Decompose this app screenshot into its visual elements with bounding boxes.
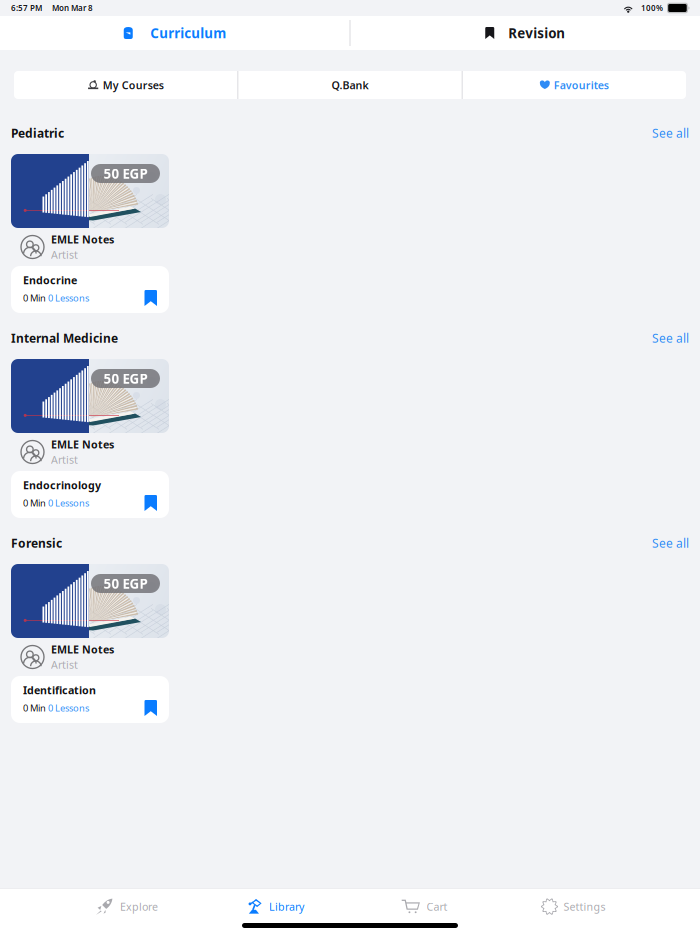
staticText: Mon Mar 8	[52, 3, 93, 13]
button[interactable]: Q.Bank	[238, 71, 462, 99]
staticText: Artist	[51, 452, 78, 467]
staticText: 50 EGP	[103, 165, 147, 182]
staticText: Explore	[120, 899, 158, 914]
button[interactable]: Settings	[499, 894, 648, 920]
button[interactable]: Curriculum	[0, 16, 349, 50]
staticText: 0 Min	[23, 497, 48, 509]
button[interactable]: Favourites	[463, 71, 686, 99]
staticText: My Courses	[103, 78, 164, 92]
staticText: 50 EGP	[103, 370, 147, 387]
staticText: 0 Lessons	[48, 292, 89, 304]
staticText: Q.Bank	[331, 78, 368, 92]
staticText: Artist	[51, 247, 78, 262]
staticText: EMLE Notes	[51, 232, 114, 246]
staticText: 6:57 PM	[11, 3, 42, 13]
staticText: Internal Medicine	[11, 330, 118, 346]
button[interactable]: Cart	[350, 894, 499, 920]
staticText: EMLE Notes	[51, 437, 114, 451]
button[interactable]: Library	[201, 894, 350, 920]
staticText: 0 Lessons	[48, 702, 89, 714]
button[interactable]: Explore	[52, 894, 201, 920]
button[interactable]: Revision	[350, 16, 700, 50]
button[interactable]: See all	[652, 125, 689, 141]
staticText: See all	[652, 125, 689, 141]
staticText: 50 EGP	[103, 575, 147, 592]
staticText: Pediatric	[11, 125, 64, 141]
staticText: Endocrine	[23, 273, 77, 287]
staticText: Endocrinology	[23, 478, 101, 492]
staticText: Favourites	[554, 78, 609, 92]
button[interactable]: 50 EGP	[11, 359, 169, 518]
staticText: Identification	[23, 683, 96, 697]
button[interactable]: My Courses	[14, 71, 237, 99]
staticText: 100%	[641, 3, 663, 13]
staticText: Library	[269, 899, 304, 914]
button[interactable]: 50 EGP	[11, 154, 169, 313]
button[interactable]: See all	[652, 330, 689, 346]
staticText: See all	[652, 330, 689, 346]
staticText: Artist	[51, 657, 78, 672]
button[interactable]: 50 EGP	[11, 564, 169, 723]
staticText: 0 Min	[23, 292, 48, 304]
staticText: Revision	[508, 24, 565, 42]
staticText: Settings	[563, 899, 605, 914]
staticText: 0 Lessons	[48, 497, 89, 509]
staticText: Curriculum	[150, 24, 226, 42]
staticText: Cart	[426, 899, 447, 914]
staticText: 0 Min	[23, 702, 48, 714]
button[interactable]: See all	[652, 535, 689, 551]
staticText: See all	[652, 535, 689, 551]
staticText: EMLE Notes	[51, 642, 114, 656]
staticText: Forensic	[11, 535, 62, 551]
